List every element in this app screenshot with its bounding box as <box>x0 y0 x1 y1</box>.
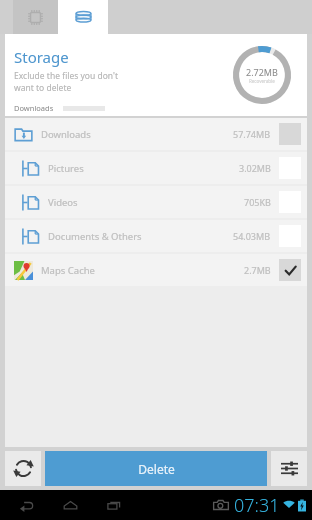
button[interactable]: Home <box>57 492 83 518</box>
button[interactable]: Settings <box>271 451 307 486</box>
staticText: 2.72MB <box>246 66 278 78</box>
staticText: 3.02MB <box>239 162 271 174</box>
staticText: 07:31 <box>234 493 280 518</box>
button[interactable]: Documents & Others <box>5 220 307 252</box>
button[interactable]: Screenshot <box>212 496 230 514</box>
staticText: 705KB <box>244 196 271 208</box>
staticText: Downloads <box>41 128 233 141</box>
button[interactable]: Select <box>279 259 301 281</box>
staticText: 2.7MB <box>244 264 271 276</box>
staticText: Downloads <box>14 103 54 113</box>
staticText: Pictures <box>48 162 239 175</box>
staticText: Recoverable <box>249 78 275 84</box>
button[interactable]: Pictures <box>5 152 307 184</box>
staticText: Videos <box>48 196 244 209</box>
staticText: Exclude the files you don't <box>14 70 118 82</box>
button[interactable]: Storage <box>58 0 108 34</box>
button[interactable]: Maps Cache <box>5 254 307 286</box>
button[interactable]: Videos <box>5 186 307 218</box>
button[interactable]: Memory <box>13 0 58 34</box>
staticText: Storage <box>14 47 69 67</box>
button[interactable]: Back <box>13 492 39 518</box>
staticText: 57.74MB <box>233 128 271 140</box>
staticText: Documents & Others <box>48 230 233 243</box>
staticText: Delete <box>138 461 175 477</box>
staticText: 54.03MB <box>233 230 271 242</box>
button[interactable]: Delete <box>45 451 267 486</box>
button[interactable]: Recents <box>101 492 127 518</box>
staticText: want to delete <box>14 82 72 94</box>
button[interactable]: Refresh <box>5 451 41 486</box>
staticText: Maps Cache <box>41 264 244 277</box>
button[interactable]: Downloads <box>5 118 307 150</box>
